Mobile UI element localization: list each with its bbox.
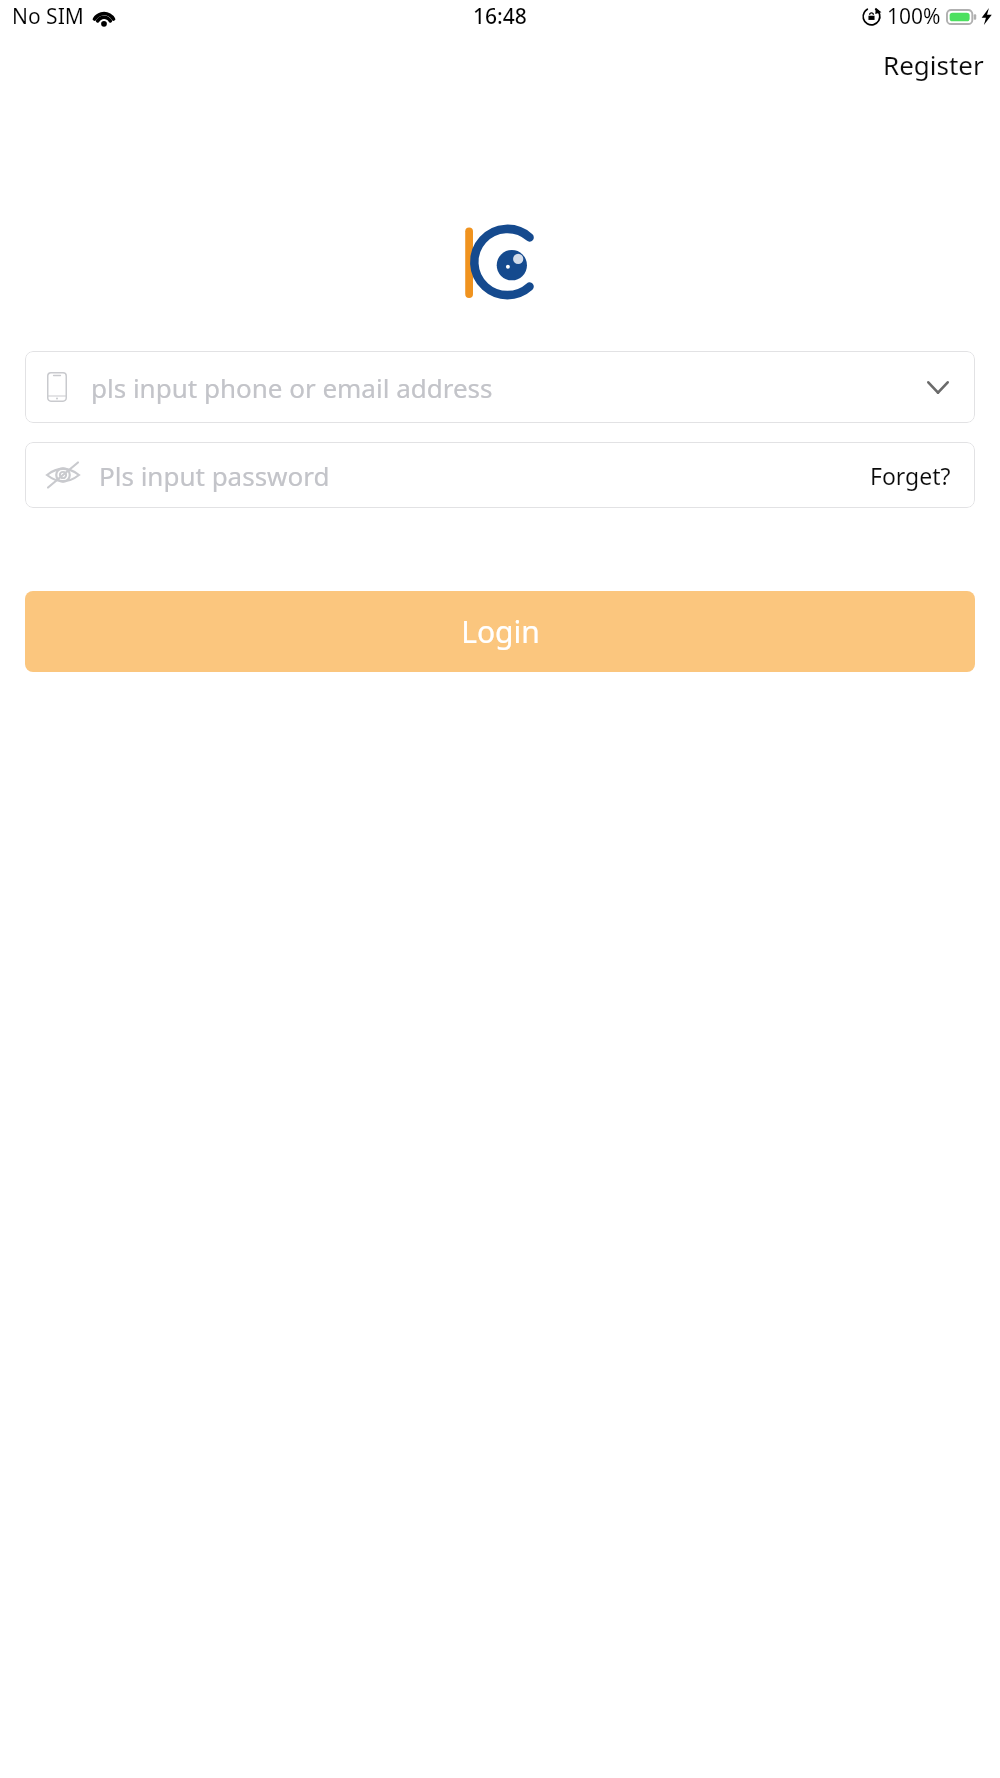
staticText: 16:48: [473, 2, 527, 31]
button[interactable]: pls input phone or email address: [25, 351, 975, 423]
staticText: Forget?: [870, 460, 951, 491]
button[interactable]: Show password: [25, 442, 975, 508]
button[interactable]: Login: [25, 591, 975, 672]
button[interactable]: Expand: [923, 372, 953, 402]
button[interactable]: Forget?: [866, 454, 955, 497]
button[interactable]: Register: [867, 43, 1000, 86]
staticText: Login: [461, 611, 540, 652]
staticText: Register: [883, 47, 984, 82]
staticText: 100%: [887, 2, 941, 31]
staticText: No SIM: [12, 2, 84, 31]
staticText: Pls input password: [99, 458, 866, 493]
staticText: pls input phone or email address: [91, 370, 915, 405]
button[interactable]: Show password: [45, 461, 81, 489]
